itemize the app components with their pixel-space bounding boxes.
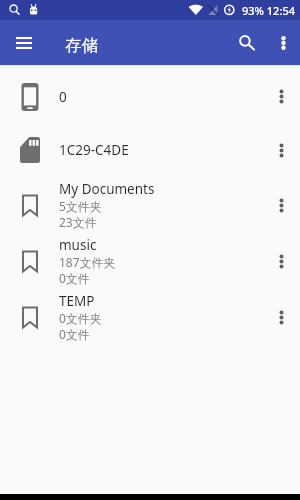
staticText: TEMP — [59, 292, 95, 310]
button[interactable]: Item options — [263, 123, 300, 177]
staticText: 0 — [59, 88, 67, 106]
staticText: 0文件 — [59, 270, 90, 286]
button[interactable]: My Documents — [0, 177, 300, 233]
staticText: 0文件夹 — [59, 310, 102, 326]
staticText: 5文件夹 — [59, 198, 102, 214]
button[interactable]: 0 — [0, 70, 300, 123]
staticText: music — [59, 236, 97, 254]
button[interactable]: Search — [227, 20, 266, 65]
staticText: 187文件夹 — [59, 254, 116, 270]
staticText: 存储 — [65, 35, 98, 56]
staticText: 93% 12:54 — [242, 3, 295, 18]
staticText: 23文件 — [59, 214, 97, 230]
button[interactable]: Item options — [263, 177, 300, 233]
button[interactable]: Item options — [263, 289, 300, 345]
button[interactable]: Open navigation drawer — [0, 20, 48, 65]
button[interactable]: More options — [266, 20, 300, 65]
button[interactable]: 1C29-C4DE — [0, 123, 300, 177]
button[interactable]: Item options — [263, 233, 300, 289]
staticText: My Documents — [59, 180, 155, 198]
staticText: 0文件 — [59, 326, 90, 342]
button[interactable]: TEMP — [0, 289, 300, 345]
staticText: 1C29-C4DE — [59, 141, 129, 159]
button[interactable]: Item options — [263, 70, 300, 123]
button[interactable]: music — [0, 233, 300, 289]
